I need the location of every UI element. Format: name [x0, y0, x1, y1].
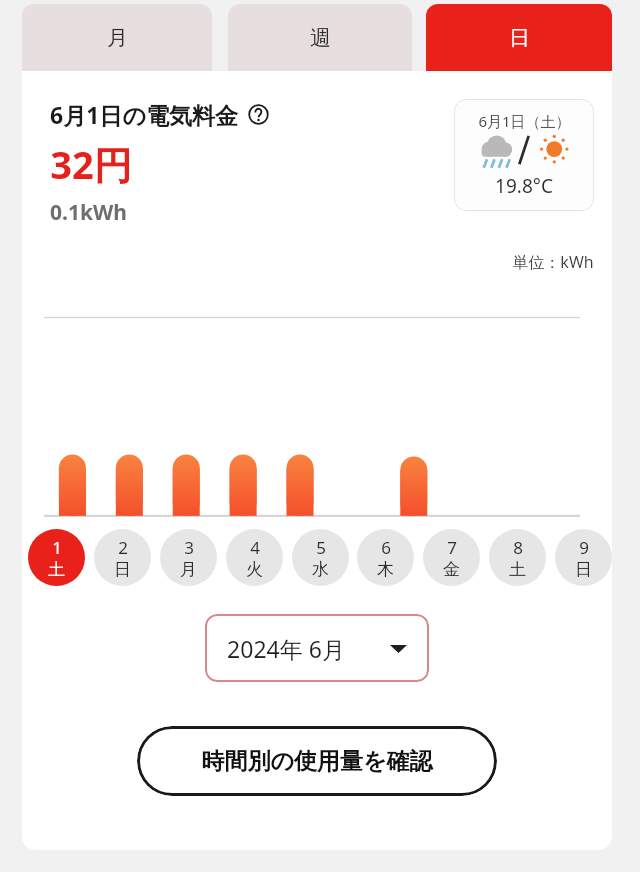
staticText: 2 — [118, 536, 128, 559]
staticText: 火 — [246, 559, 263, 580]
button[interactable]: 4 — [226, 529, 283, 586]
staticText: 水 — [312, 559, 329, 580]
button[interactable]: 5 — [292, 529, 349, 586]
staticText: 日 — [509, 25, 530, 51]
button[interactable]: 時間別の使用量を確認 — [137, 726, 497, 796]
staticText: 金 — [443, 559, 460, 580]
staticText: 時間別の使用量を確認 — [201, 747, 433, 776]
staticText: 7 — [447, 536, 457, 559]
staticText: 6月1日（土） — [478, 111, 571, 131]
staticText: 日 — [114, 559, 131, 580]
staticText: 月 — [107, 25, 128, 51]
staticText: 8 — [513, 536, 523, 559]
staticText: 19.8°C — [495, 173, 553, 199]
button[interactable]: 6 — [357, 529, 414, 586]
staticText: 6月1日の電気料金 — [50, 99, 238, 130]
staticText: 週 — [310, 25, 331, 51]
staticText: 月 — [180, 559, 197, 580]
staticText: 土 — [48, 559, 65, 580]
staticText: 3 — [184, 536, 194, 559]
button[interactable]: 日 — [426, 4, 612, 71]
button[interactable]: ヘルプ — [248, 104, 269, 125]
staticText: 2024年 6月 — [227, 633, 345, 664]
staticText: 4 — [250, 536, 260, 559]
button[interactable]: 1 — [28, 529, 85, 586]
staticText: 木 — [377, 559, 394, 580]
staticText: 9 — [579, 536, 589, 559]
staticText: 土 — [509, 559, 526, 580]
staticText: 単位：kWh — [512, 251, 594, 273]
button[interactable]: 2 — [94, 529, 151, 586]
button[interactable]: 週 — [228, 4, 412, 71]
staticText: 32円 — [50, 138, 132, 190]
button[interactable]: 8 — [489, 529, 546, 586]
staticText: 5 — [316, 536, 326, 559]
button[interactable]: 9 — [555, 529, 612, 586]
staticText: 1 — [52, 536, 62, 559]
staticText: 日 — [575, 559, 592, 580]
button[interactable]: 7 — [423, 529, 480, 586]
button[interactable]: 3 — [160, 529, 217, 586]
button[interactable]: 月 — [22, 4, 212, 71]
button[interactable]: 2024年 6月 — [205, 614, 429, 682]
staticText: 0.1kWh — [50, 198, 127, 227]
staticText: 6 — [381, 536, 391, 559]
button[interactable]: 6月1日（土） — [454, 99, 594, 211]
